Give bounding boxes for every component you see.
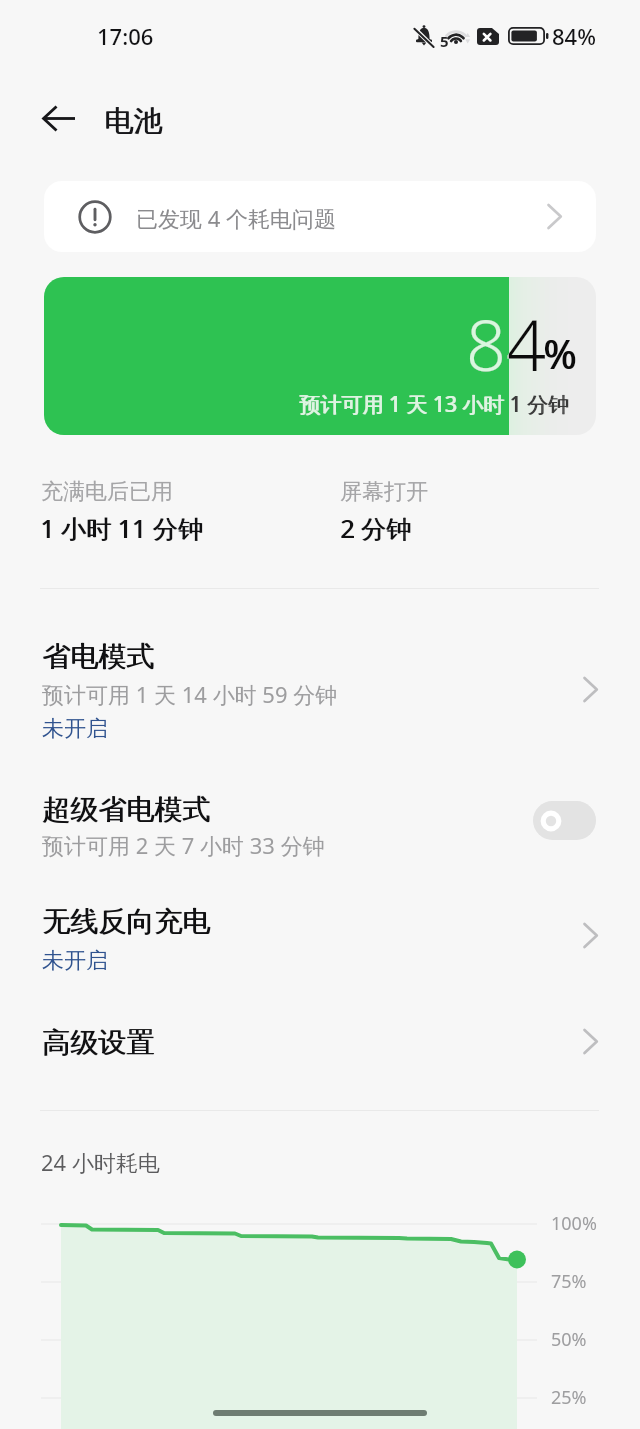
staticText: 25% <box>551 1385 587 1410</box>
staticText: 84% <box>552 21 596 51</box>
staticText: 电池 <box>104 103 162 140</box>
button[interactable]: 已发现 4 个耗电问题 <box>44 181 596 252</box>
button[interactable]: 超级省电模式 <box>0 766 640 876</box>
staticText: % <box>543 326 577 380</box>
button[interactable]: Toggle super power saving mode <box>533 801 596 840</box>
staticText: 充满电后已用 <box>41 478 173 506</box>
staticText: 75% <box>551 1269 587 1294</box>
staticText: 预计可用 2 天 7 小时 33 分钟 <box>42 830 325 860</box>
staticText: 预计可用 1 天 13 小时 1 分钟 <box>299 390 569 419</box>
staticText: 未开启 <box>42 715 108 743</box>
staticText: 84 <box>466 296 546 391</box>
staticText: 超级省电模式 <box>43 792 211 827</box>
staticText: 预计可用 1 天 13 小时 1 分钟 <box>300 390 570 419</box>
button[interactable]: 高级设置 <box>0 998 640 1082</box>
staticText: % <box>544 326 578 380</box>
staticText: 高级设置 <box>42 1025 154 1060</box>
staticText: 1 小时 11 分钟 <box>40 511 203 545</box>
staticText: % <box>543 326 577 380</box>
staticText: 预计可用 1 天 14 小时 59 分钟 <box>42 679 338 709</box>
staticText: 省电模式 <box>42 639 154 674</box>
staticText: 预计可用 1 天 13 小时 1 分钟 <box>299 390 569 419</box>
staticText: 17:06 <box>97 21 154 51</box>
button[interactable]: 无线反向充电 <box>0 878 640 988</box>
staticText: 预计可用 1 天 13 小时 1 分钟 <box>300 390 570 419</box>
staticText: 已发现 4 个耗电问题 <box>136 203 337 233</box>
staticText: 高级设置 <box>43 1025 155 1060</box>
staticText: 超级省电模式 <box>42 792 210 827</box>
staticText: 2 分钟 <box>341 511 412 545</box>
staticText: 省电模式 <box>43 639 155 674</box>
staticText: 100% <box>551 1211 597 1236</box>
staticText: 2 分钟 <box>340 511 411 545</box>
staticText: 无线反向充电 <box>43 904 211 939</box>
staticText: 84 <box>466 296 546 391</box>
staticText: 未开启 <box>42 947 108 975</box>
staticText: 1 小时 11 分钟 <box>41 511 204 545</box>
staticText: 屏幕打开 <box>340 478 428 506</box>
staticText: % <box>544 326 578 380</box>
staticText: 无线反向充电 <box>42 904 210 939</box>
staticText: 5 <box>440 31 449 51</box>
button[interactable]: Back <box>29 90 87 146</box>
staticText: 50% <box>551 1327 587 1352</box>
button[interactable]: 省电模式 <box>0 612 640 762</box>
staticText: 24 小时耗电 <box>41 1147 160 1177</box>
staticText: 电池 <box>105 103 163 140</box>
